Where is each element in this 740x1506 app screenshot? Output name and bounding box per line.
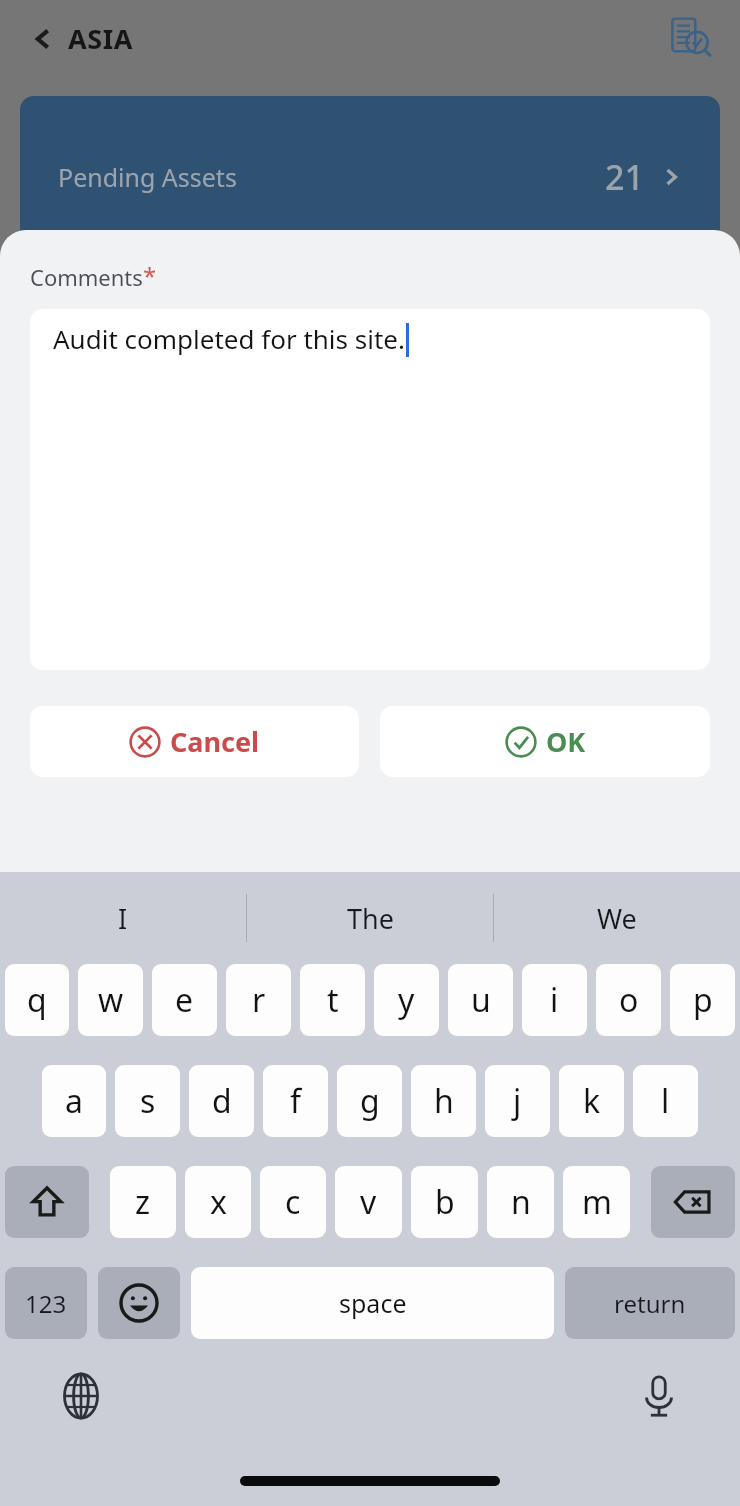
button[interactable]: o bbox=[596, 964, 661, 1036]
button[interactable]: z bbox=[110, 1166, 176, 1238]
button[interactable]: s bbox=[115, 1065, 180, 1137]
staticText: u bbox=[471, 978, 491, 1022]
button[interactable]: I bbox=[0, 872, 246, 964]
staticText: x bbox=[210, 1180, 227, 1224]
button[interactable]: OK bbox=[380, 706, 710, 777]
button[interactable]: g bbox=[337, 1065, 402, 1137]
button[interactable]: Shift bbox=[5, 1166, 89, 1238]
button[interactable]: space bbox=[191, 1267, 554, 1339]
staticText: i bbox=[550, 978, 559, 1022]
button[interactable]: u bbox=[448, 964, 513, 1036]
staticText: q bbox=[27, 978, 47, 1022]
button[interactable]: Backspace bbox=[651, 1166, 735, 1238]
button[interactable]: c bbox=[260, 1166, 326, 1238]
staticText: h bbox=[434, 1079, 454, 1123]
button[interactable]: x bbox=[185, 1166, 251, 1238]
button[interactable]: 123 bbox=[5, 1267, 87, 1339]
button[interactable]: y bbox=[374, 964, 439, 1036]
button[interactable]: w bbox=[78, 964, 143, 1036]
button[interactable]: b bbox=[411, 1166, 478, 1238]
staticText: We bbox=[597, 900, 637, 937]
button[interactable]: Change keyboard bbox=[52, 1367, 110, 1425]
staticText: n bbox=[511, 1180, 531, 1224]
staticText: f bbox=[290, 1079, 302, 1123]
button[interactable]: n bbox=[487, 1166, 554, 1238]
button[interactable]: a bbox=[42, 1065, 106, 1137]
staticText: m bbox=[582, 1180, 612, 1224]
staticText: s bbox=[140, 1079, 156, 1123]
staticText: e bbox=[175, 978, 194, 1022]
button[interactable]: Audit report bbox=[666, 14, 714, 62]
button[interactable]: d bbox=[189, 1065, 254, 1137]
button[interactable]: Dictation bbox=[630, 1367, 688, 1425]
staticText: y bbox=[398, 978, 415, 1022]
button[interactable]: m bbox=[563, 1166, 630, 1238]
button[interactable]: t bbox=[300, 964, 365, 1036]
staticText: 123 bbox=[25, 1287, 67, 1320]
button[interactable]: v bbox=[335, 1166, 402, 1238]
staticText: o bbox=[619, 978, 639, 1022]
button[interactable]: Emoji bbox=[98, 1267, 180, 1339]
staticText: p bbox=[693, 978, 713, 1022]
staticText: a bbox=[65, 1079, 83, 1123]
staticText: OK bbox=[546, 723, 586, 760]
staticText: return bbox=[614, 1287, 686, 1320]
button[interactable]: i bbox=[522, 964, 587, 1036]
staticText: z bbox=[135, 1180, 151, 1224]
staticText: space bbox=[339, 1286, 407, 1320]
button[interactable]: return bbox=[565, 1267, 735, 1339]
staticText: b bbox=[435, 1180, 455, 1224]
button[interactable]: Audit completed for this site. bbox=[30, 309, 710, 670]
staticText: The bbox=[347, 900, 394, 937]
staticText: 21 bbox=[605, 154, 644, 200]
button[interactable]: Pending Assets bbox=[20, 96, 720, 256]
button[interactable]: j bbox=[485, 1065, 550, 1137]
staticText: Comments bbox=[30, 262, 143, 292]
staticText: k bbox=[583, 1079, 601, 1123]
button[interactable]: k bbox=[559, 1065, 624, 1137]
staticText: r bbox=[252, 978, 266, 1022]
staticText: j bbox=[513, 1079, 522, 1123]
button[interactable]: The bbox=[247, 872, 493, 964]
staticText: v bbox=[360, 1180, 377, 1224]
staticText: Audit completed for this site. bbox=[53, 321, 405, 356]
staticText: g bbox=[360, 1079, 380, 1123]
staticText: Cancel bbox=[170, 723, 260, 760]
staticText: t bbox=[327, 978, 339, 1022]
button[interactable]: h bbox=[411, 1065, 476, 1137]
staticText: c bbox=[285, 1180, 301, 1224]
staticText: l bbox=[661, 1079, 670, 1123]
button[interactable]: f bbox=[263, 1065, 328, 1137]
staticText: w bbox=[98, 978, 124, 1022]
button[interactable]: r bbox=[226, 964, 291, 1036]
button[interactable]: Cancel bbox=[30, 706, 359, 777]
button[interactable]: l bbox=[633, 1065, 698, 1137]
button[interactable]: e bbox=[152, 964, 217, 1036]
staticText: d bbox=[212, 1079, 232, 1123]
button[interactable]: p bbox=[670, 964, 735, 1036]
staticText: * bbox=[143, 259, 157, 292]
button[interactable]: q bbox=[5, 964, 69, 1036]
button[interactable]: ASIA bbox=[30, 20, 134, 57]
staticText: Pending Assets bbox=[58, 160, 237, 194]
staticText: I bbox=[118, 900, 128, 937]
staticText: ASIA bbox=[68, 20, 134, 57]
button[interactable]: We bbox=[494, 872, 740, 964]
